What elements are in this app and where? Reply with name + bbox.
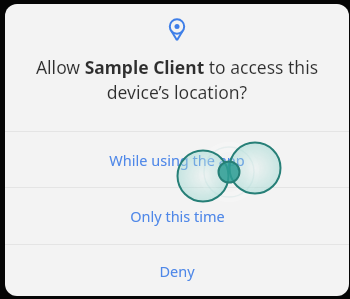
button[interactable]: Deny xyxy=(5,245,349,296)
button[interactable]: Only this time xyxy=(5,188,349,244)
staticText: Allow Sample Client to access this devic… xyxy=(27,55,327,104)
staticText: Only this time xyxy=(130,206,225,226)
other: Location xyxy=(5,17,349,43)
button[interactable]: While using the app xyxy=(5,132,349,187)
staticText: Deny xyxy=(159,261,195,281)
staticText: While using the app xyxy=(109,150,245,170)
